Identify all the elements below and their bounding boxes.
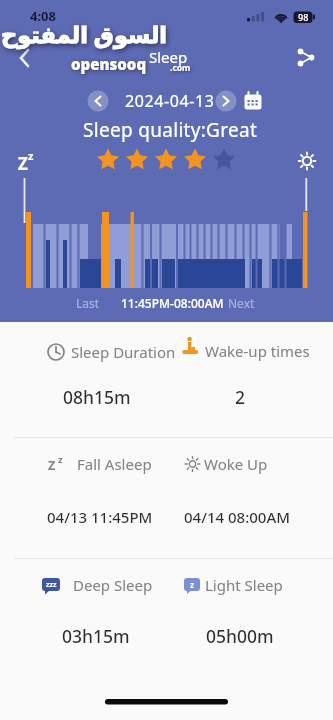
staticText: z: [58, 453, 63, 465]
staticText: Light Sleep: [205, 575, 283, 595]
staticText: 08h15m: [63, 385, 131, 409]
staticText: Fall Asleep: [77, 454, 152, 474]
staticText: 4:08: [30, 7, 56, 25]
staticText: .com: [170, 62, 191, 74]
staticText: Woke Up: [204, 454, 268, 474]
staticText: 04/14 08:00AM: [184, 507, 290, 527]
staticText: Sleep quality:Great: [83, 117, 258, 143]
staticText: 2024-04-13: [125, 90, 215, 112]
staticText: Sleep Duration: [71, 342, 176, 362]
staticText: Next: [228, 295, 255, 311]
staticText: 98: [298, 11, 309, 23]
staticText: z: [190, 579, 195, 591]
staticText: 11:45PM-08:00AM: [121, 295, 224, 311]
staticText: Z: [18, 152, 28, 175]
staticText: Sleep: [149, 47, 188, 67]
staticText: 2: [235, 385, 246, 409]
staticText: Deep Sleep: [73, 575, 153, 595]
staticText: 04/13 11:45PM: [47, 507, 153, 527]
staticText: z: [28, 148, 34, 163]
staticText: Wake-up times: [205, 341, 310, 361]
staticText: Z: [48, 457, 56, 474]
staticText: السوق المفتوح: [1, 19, 168, 50]
staticText: zzz: [46, 580, 57, 590]
staticText: 03h15m: [62, 624, 130, 648]
staticText: opensooq: [71, 54, 147, 74]
staticText: 05h00m: [206, 624, 274, 648]
staticText: Last: [76, 295, 100, 311]
